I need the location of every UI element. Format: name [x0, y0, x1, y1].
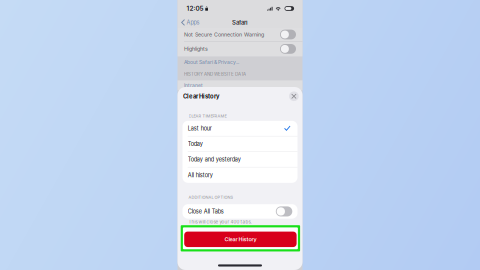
staticText: Close All Tabs	[188, 208, 224, 215]
button[interactable]: Today and yesterday	[182, 152, 297, 167]
staticText: Clear History	[224, 236, 256, 243]
staticText: Not Secure Connection Warning	[184, 31, 264, 38]
button[interactable]: Today	[182, 136, 297, 152]
staticText: Safari	[232, 19, 248, 26]
staticText: Clear History	[183, 93, 220, 100]
staticText: ADDITIONAL OPTIONS	[188, 195, 233, 200]
staticText: Today and yesterday	[188, 156, 241, 163]
staticText: CLEAR TIMEFRAME	[188, 113, 226, 118]
staticText: Highlights	[184, 46, 208, 52]
button[interactable]: Apps	[177, 16, 203, 29]
button[interactable]: Clear History	[177, 225, 302, 251]
staticText: 12:05	[186, 5, 203, 12]
staticText: HISTORY AND WEBSITE DATA	[184, 71, 246, 77]
staticText: All history	[188, 172, 213, 178]
staticText: This will close your 400 tabs.	[188, 219, 251, 225]
button[interactable]: Close	[289, 91, 299, 101]
staticText: Apps	[186, 19, 199, 26]
staticText: Today	[188, 140, 203, 147]
button[interactable]: All history	[182, 167, 297, 183]
button[interactable]: Close All Tabs	[177, 204, 302, 219]
button[interactable]: Last hour	[182, 121, 297, 136]
staticText: Last hour	[188, 125, 212, 132]
staticText: About Safari & Privacy...	[184, 59, 239, 65]
staticText: Intranet	[184, 82, 203, 88]
